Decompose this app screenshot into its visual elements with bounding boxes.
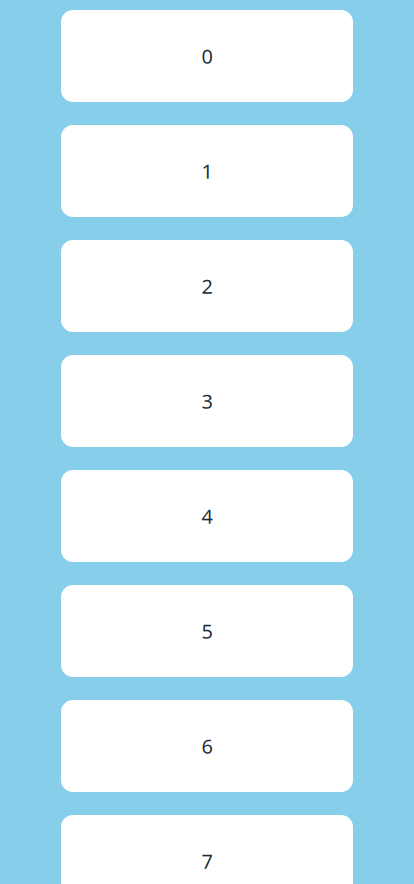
button[interactable]: 1 (61, 125, 353, 217)
staticText: 5 (201, 618, 212, 644)
button[interactable]: 4 (61, 470, 353, 562)
staticText: 6 (201, 733, 212, 759)
staticText: 7 (201, 848, 212, 874)
button[interactable]: 6 (61, 700, 353, 792)
button[interactable]: 3 (61, 355, 353, 447)
staticText: 4 (201, 503, 212, 529)
button[interactable]: 0 (61, 10, 353, 102)
staticText: 1 (201, 158, 212, 184)
staticText: 0 (201, 43, 212, 69)
staticText: 3 (201, 388, 212, 414)
staticText: 2 (201, 273, 212, 299)
button[interactable]: 7 (61, 815, 353, 884)
button[interactable]: 5 (61, 585, 353, 677)
button[interactable]: 2 (61, 240, 353, 332)
